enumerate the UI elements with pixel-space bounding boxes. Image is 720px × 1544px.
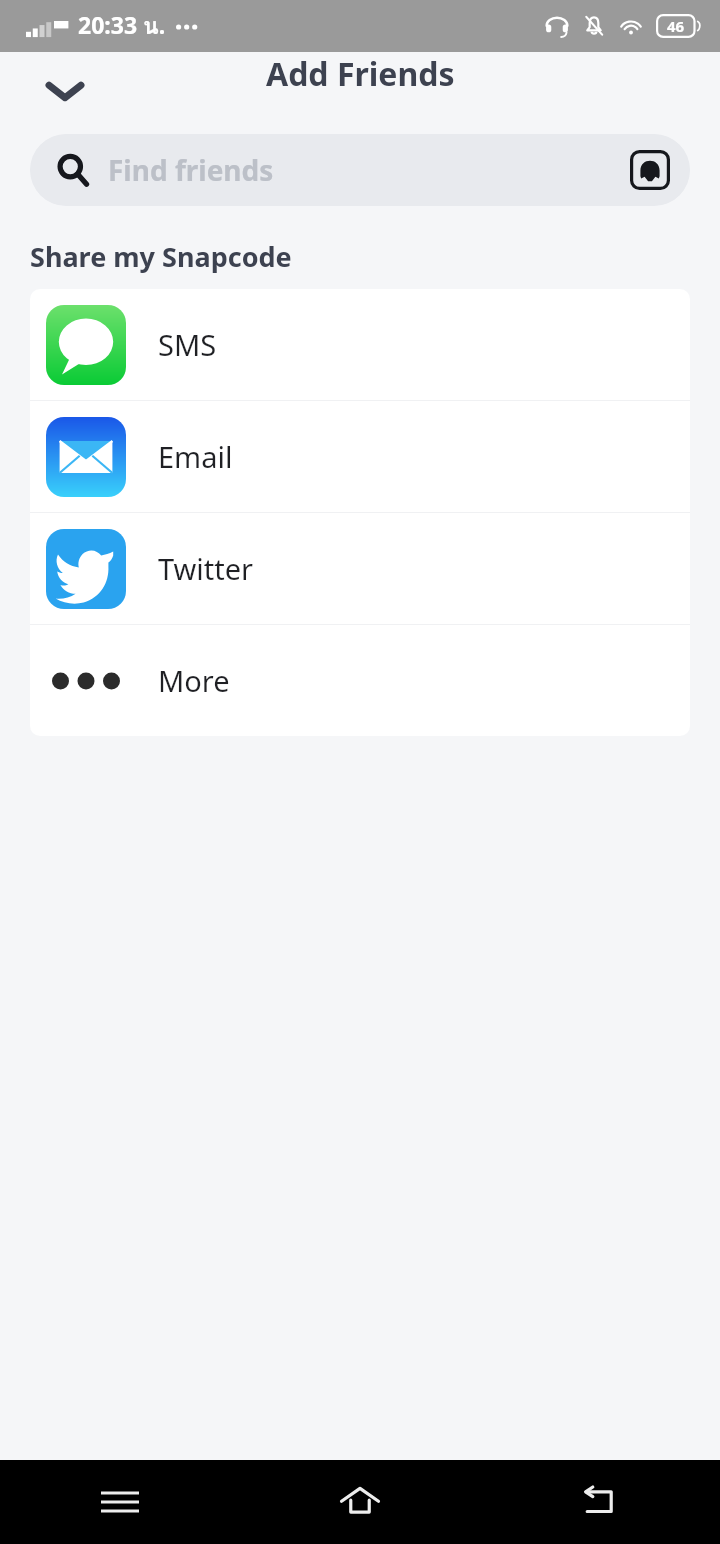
staticText: More (158, 661, 230, 700)
staticText: Add Friends (266, 52, 455, 96)
button[interactable]: Back (480, 1460, 720, 1544)
button[interactable]: More (30, 625, 690, 736)
staticText: Email (158, 437, 233, 476)
button[interactable]: Twitter (30, 513, 690, 624)
button[interactable]: Find friends (30, 134, 690, 206)
button[interactable]: Collapse (30, 56, 100, 126)
button[interactable]: Recent apps (0, 1460, 240, 1544)
staticText: Find friends (108, 151, 274, 189)
staticText: 46 (667, 16, 685, 36)
button[interactable]: SMS (30, 289, 690, 400)
staticText: SMS (158, 325, 217, 364)
button[interactable]: Home (240, 1460, 480, 1544)
button[interactable]: My Snapcode (628, 148, 672, 192)
button[interactable]: Email (30, 401, 690, 512)
staticText: Share my Snapcode (30, 238, 292, 275)
staticText: 20:33 น. (78, 8, 166, 45)
staticText: Twitter (158, 549, 254, 588)
